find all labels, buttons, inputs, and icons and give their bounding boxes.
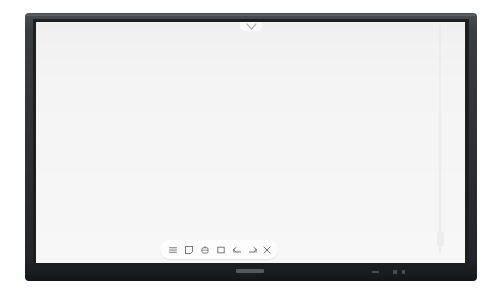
button[interactable]: Undo (230, 240, 244, 259)
button[interactable]: Menu (166, 240, 180, 259)
button[interactable]: Close (262, 240, 272, 259)
button[interactable]: Pen (198, 240, 212, 259)
button[interactable]: Open menu (240, 22, 262, 31)
button[interactable]: New note (182, 240, 196, 259)
button[interactable]: Redo (246, 240, 260, 259)
button[interactable]: Eraser (214, 240, 228, 259)
